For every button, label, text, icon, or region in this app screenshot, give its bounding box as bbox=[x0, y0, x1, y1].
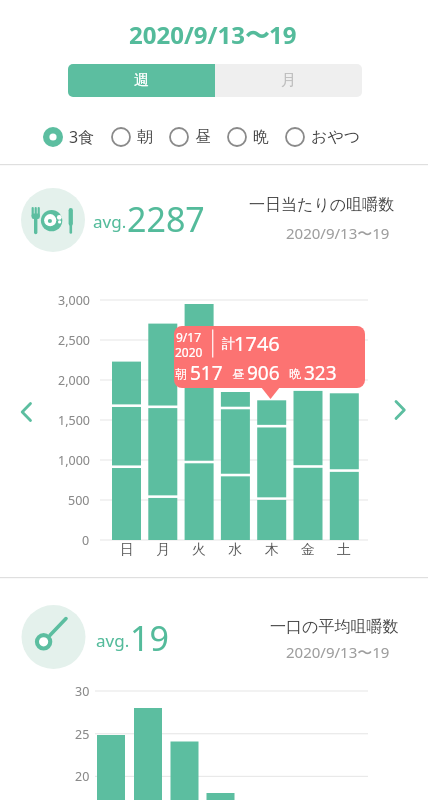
button[interactable]: おやつ bbox=[285, 127, 361, 147]
staticText: 晩 bbox=[253, 127, 269, 147]
staticText: 火 bbox=[192, 541, 206, 559]
button[interactable] bbox=[12, 398, 40, 426]
staticText: 一口の平均咀嚼数 bbox=[270, 617, 399, 637]
staticText: 2020/9/13〜19 bbox=[286, 642, 390, 662]
staticText: 30 bbox=[75, 683, 90, 700]
staticText: 20 bbox=[75, 768, 90, 785]
staticText: 木 bbox=[265, 541, 279, 559]
staticText: 906 bbox=[247, 360, 280, 386]
button[interactable]: 晩 bbox=[227, 127, 269, 147]
staticText: 計 bbox=[222, 335, 236, 352]
staticText: 一日当たりの咀嚼数 bbox=[249, 195, 395, 215]
staticText: 1746 bbox=[234, 330, 280, 357]
button[interactable]: 朝 bbox=[111, 127, 153, 147]
staticText: 朝 bbox=[137, 127, 153, 147]
staticText: avg. bbox=[96, 629, 130, 652]
staticText: 週 bbox=[134, 71, 149, 90]
staticText: 500 bbox=[68, 492, 90, 509]
staticText: おやつ bbox=[311, 127, 361, 147]
staticText: 朝 bbox=[175, 366, 187, 381]
staticText: 2020 bbox=[175, 344, 203, 360]
staticText: 昼 bbox=[232, 366, 244, 381]
staticText: 2287 bbox=[127, 196, 205, 238]
staticText: 2,000 bbox=[58, 372, 90, 389]
staticText: 517 bbox=[190, 360, 223, 386]
staticText: avg. bbox=[93, 210, 127, 233]
staticText: 2,500 bbox=[58, 332, 90, 349]
staticText: 9/17 bbox=[176, 329, 202, 345]
staticText: 323 bbox=[304, 360, 337, 386]
staticText: 月 bbox=[281, 71, 296, 90]
staticText: 2020/9/13〜19 bbox=[129, 18, 297, 51]
button[interactable] bbox=[388, 396, 416, 424]
staticText: 昼 bbox=[195, 127, 211, 147]
button[interactable]: 週 bbox=[68, 64, 215, 97]
staticText: 金 bbox=[301, 541, 315, 559]
staticText: 0 bbox=[82, 532, 90, 549]
button[interactable]: 昼 bbox=[169, 127, 211, 147]
staticText: 晩 bbox=[289, 366, 301, 381]
staticText: 1,500 bbox=[58, 412, 90, 429]
staticText: 水 bbox=[228, 541, 242, 559]
staticText: 土 bbox=[337, 541, 351, 559]
staticText: 2020/9/13〜19 bbox=[286, 223, 390, 243]
staticText: 3,000 bbox=[58, 292, 90, 309]
button[interactable]: 月 bbox=[215, 64, 362, 97]
staticText: 19 bbox=[130, 615, 169, 657]
staticText: 日 bbox=[120, 541, 134, 559]
staticText: 1,000 bbox=[58, 452, 90, 469]
staticText: 3食 bbox=[69, 126, 95, 148]
staticText: 25 bbox=[75, 726, 90, 743]
button[interactable]: 3食 bbox=[43, 126, 95, 148]
staticText: 月 bbox=[156, 541, 170, 559]
